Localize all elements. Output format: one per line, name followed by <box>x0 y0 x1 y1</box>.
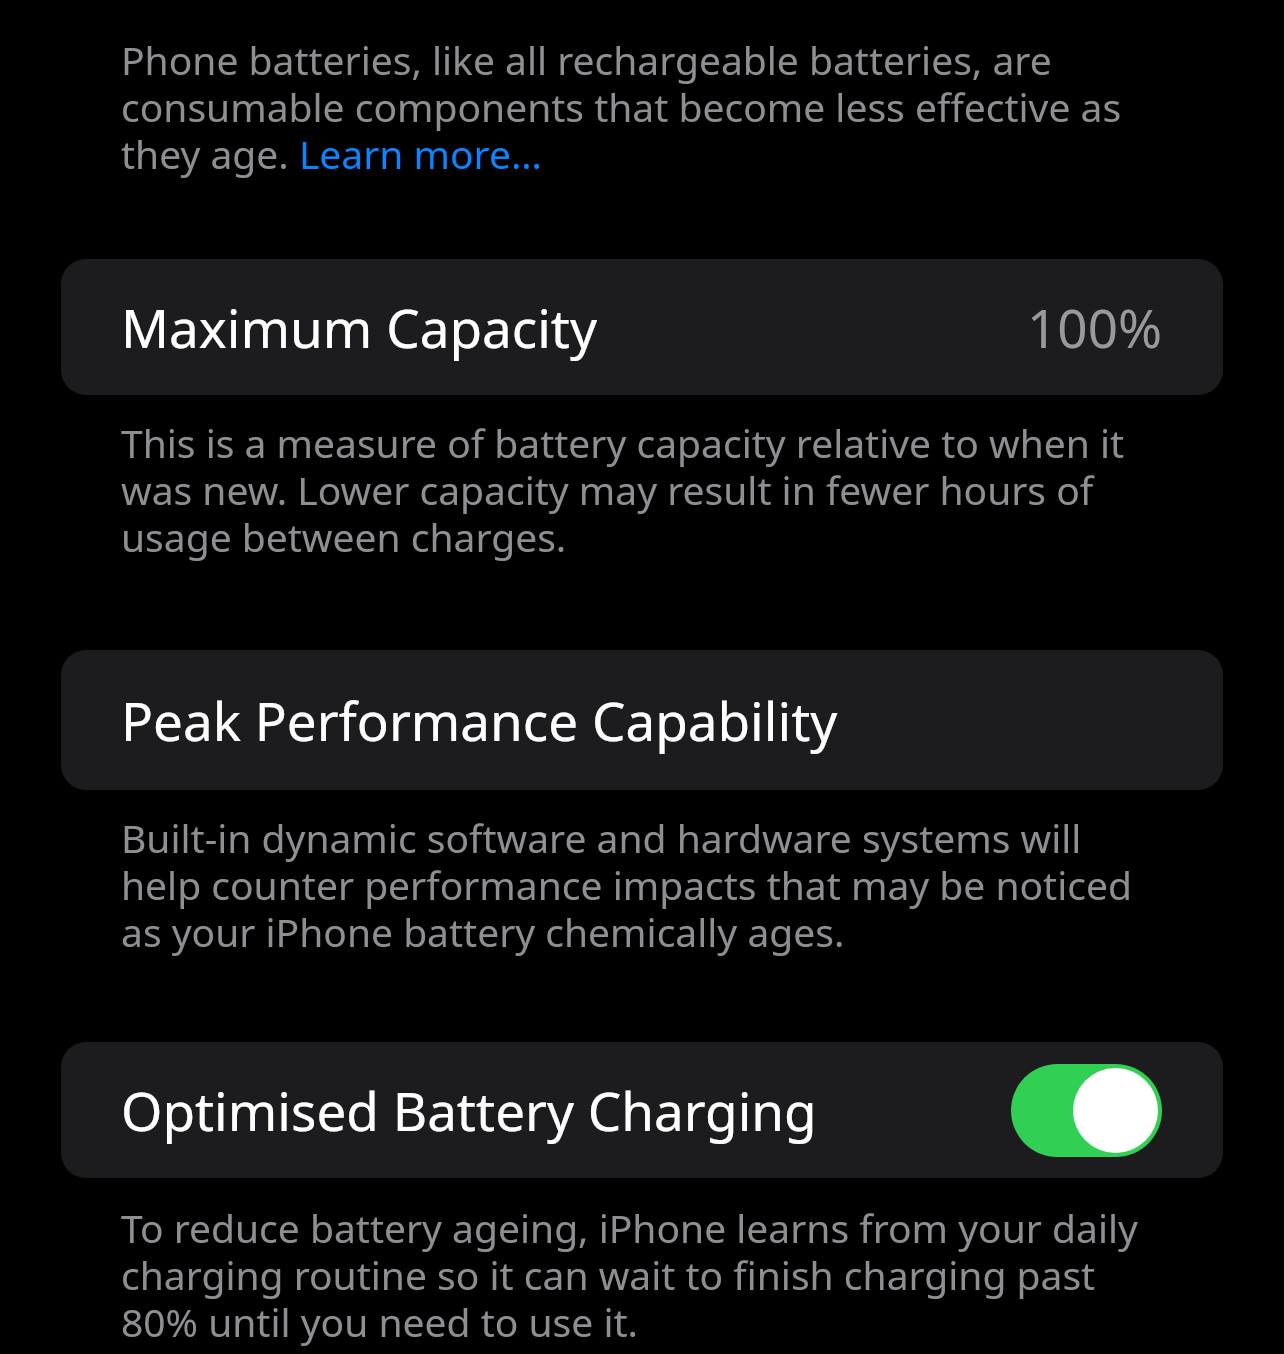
staticText: Maximum Capacity <box>121 291 597 363</box>
button[interactable]: Peak Performance Capability <box>61 650 1223 790</box>
button[interactable]: Optimised Battery Charging <box>61 1042 1223 1178</box>
staticText: Built-in dynamic software and hardware s… <box>121 811 1164 958</box>
staticText: 100% <box>1027 291 1162 363</box>
staticText: This is a measure of battery capacity re… <box>121 416 1164 563</box>
staticText: Optimised Battery Charging <box>121 1074 817 1146</box>
staticText: Peak Performance Capability <box>121 684 838 756</box>
staticText: Phone batteries, like all rechargeable b… <box>121 33 1164 180</box>
button[interactable]: Maximum Capacity <box>61 259 1223 395</box>
button[interactable]: Optimised Battery Charging toggle <box>1011 1064 1162 1157</box>
staticText: To reduce battery ageing, iPhone learns … <box>121 1201 1164 1348</box>
